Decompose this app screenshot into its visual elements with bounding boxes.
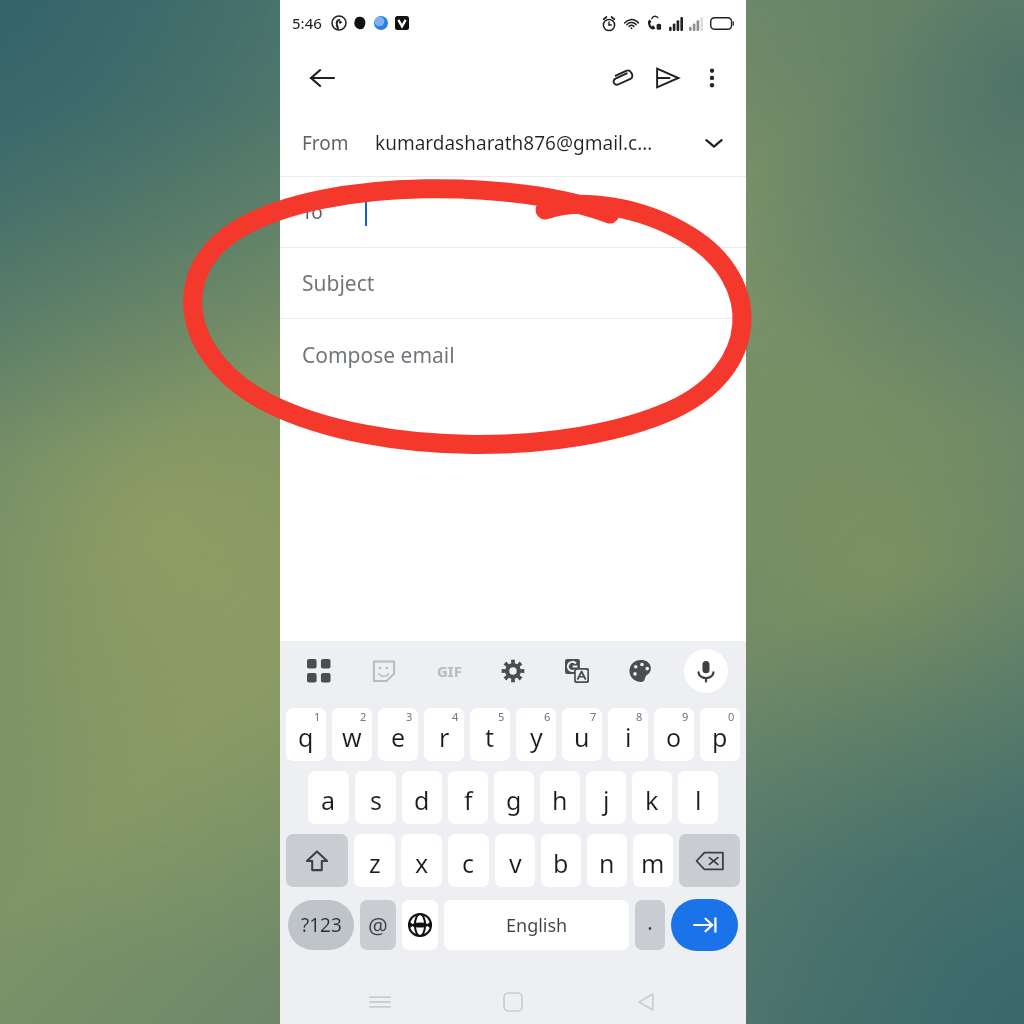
button[interactable]: Translate xyxy=(556,650,598,692)
button[interactable]: GIF xyxy=(428,650,470,692)
button[interactable]: At sign xyxy=(360,900,396,950)
staticText: l xyxy=(695,783,702,817)
button[interactable]: l xyxy=(678,771,718,824)
staticText: j xyxy=(603,783,610,817)
staticText: n xyxy=(599,846,615,880)
staticText: m xyxy=(641,846,665,880)
staticText: Compose email xyxy=(302,341,455,370)
button[interactable]: a xyxy=(308,771,349,824)
button[interactable]: Backspace xyxy=(679,834,740,887)
staticText: k xyxy=(645,783,659,817)
button[interactable]: h xyxy=(540,771,580,824)
button[interactable]: u xyxy=(562,708,602,761)
button[interactable]: f xyxy=(448,771,488,824)
staticText: f xyxy=(464,783,473,817)
button[interactable]: More options xyxy=(690,56,734,100)
staticText: @ xyxy=(368,910,388,940)
button[interactable]: x xyxy=(401,834,442,887)
button[interactable]: Compose email xyxy=(280,319,746,391)
button[interactable]: g xyxy=(494,771,534,824)
button[interactable]: t xyxy=(470,708,510,761)
staticText: q xyxy=(298,720,314,754)
button[interactable]: b xyxy=(541,834,581,887)
staticText: y xyxy=(530,720,543,754)
staticText: To xyxy=(302,199,323,225)
staticText: kumardasharath876@gmail.c… xyxy=(375,130,653,156)
staticText: 6 xyxy=(544,709,551,724)
staticText: 4 xyxy=(452,709,459,724)
button[interactable]: s xyxy=(355,771,396,824)
button[interactable]: Recent apps xyxy=(356,980,404,1024)
button[interactable]: r xyxy=(424,708,464,761)
button[interactable]: j xyxy=(586,771,626,824)
button[interactable]: Change language xyxy=(402,900,438,950)
button[interactable]: o xyxy=(654,708,694,761)
button[interactable]: q xyxy=(286,708,326,761)
button[interactable]: w xyxy=(332,708,372,761)
button[interactable]: p xyxy=(700,708,740,761)
staticText: 5:46 xyxy=(292,13,322,33)
button[interactable]: Attach file xyxy=(598,55,644,101)
button[interactable]: v xyxy=(495,834,535,887)
staticText: u xyxy=(574,720,590,754)
staticText: o xyxy=(666,720,682,754)
staticText: . xyxy=(647,906,653,936)
button[interactable]: Apps xyxy=(298,650,340,692)
staticText: c xyxy=(462,846,475,880)
staticText: r xyxy=(439,720,450,754)
button[interactable]: Stickers xyxy=(363,650,405,692)
button[interactable]: From xyxy=(280,110,746,176)
button[interactable]: z xyxy=(354,834,395,887)
button[interactable]: d xyxy=(402,771,442,824)
staticText: s xyxy=(370,783,382,817)
staticText: 1 xyxy=(314,709,321,724)
staticText: 8 xyxy=(636,709,643,724)
staticText: 0 xyxy=(728,709,735,724)
button[interactable]: English xyxy=(444,900,629,950)
staticText: p xyxy=(712,720,728,754)
button[interactable]: To xyxy=(280,177,746,247)
button[interactable]: Back xyxy=(622,980,670,1024)
staticText: i xyxy=(625,720,632,754)
button[interactable]: Subject xyxy=(280,248,746,318)
button[interactable]: Theme xyxy=(620,650,662,692)
staticText: e xyxy=(391,720,406,754)
button[interactable]: Voice input xyxy=(684,649,728,693)
staticText: 9 xyxy=(682,709,689,724)
button[interactable]: k xyxy=(632,771,672,824)
staticText: 2 xyxy=(360,709,367,724)
staticText: 3 xyxy=(406,709,413,724)
button[interactable]: c xyxy=(448,834,489,887)
staticText: English xyxy=(506,913,568,938)
staticText: x xyxy=(415,846,429,880)
button[interactable]: n xyxy=(587,834,627,887)
staticText: 7 xyxy=(590,709,597,724)
button[interactable]: Shift xyxy=(286,834,348,887)
staticText: a xyxy=(321,783,336,817)
staticText: GIF xyxy=(437,661,462,681)
button[interactable]: i xyxy=(608,708,648,761)
button[interactable]: Back xyxy=(300,56,344,100)
button[interactable]: Settings xyxy=(492,650,534,692)
staticText: d xyxy=(414,783,430,817)
button[interactable]: Period xyxy=(635,900,665,950)
staticText: 5 xyxy=(498,709,505,724)
staticText: v xyxy=(509,846,522,880)
staticText: b xyxy=(553,846,569,880)
button[interactable]: ?123 xyxy=(288,900,354,950)
button[interactable]: Home xyxy=(489,980,537,1024)
button[interactable]: e xyxy=(378,708,418,761)
staticText: w xyxy=(342,720,362,754)
staticText: Subject xyxy=(302,269,375,298)
staticText: g xyxy=(506,783,522,817)
button[interactable]: y xyxy=(516,708,556,761)
staticText: h xyxy=(552,783,568,817)
staticText: z xyxy=(369,846,381,880)
button[interactable]: Send xyxy=(644,55,690,101)
button[interactable]: Next field xyxy=(671,899,738,951)
staticText: t xyxy=(485,720,495,754)
staticText: ?123 xyxy=(301,912,342,938)
button[interactable]: m xyxy=(633,834,673,887)
staticText: From xyxy=(302,130,349,156)
